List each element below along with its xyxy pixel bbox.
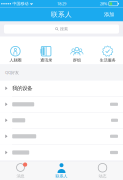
staticText: QQ好友 [5,70,19,75]
button[interactable]: 我的设备 [0,80,123,96]
staticText: 添加 [104,11,114,18]
button[interactable]: 人脉圈 [0,36,31,64]
staticText: 中国移动 [13,1,29,6]
button[interactable]: 搜索 [4,24,119,33]
staticText: 28% [100,1,107,6]
staticText: 我的设备 [12,85,32,92]
staticText: 消息 [16,174,24,179]
button[interactable] [0,128,123,144]
staticText: 搜索 [60,26,68,31]
staticText: 群组 [73,58,81,62]
staticText: 联系人 [55,174,67,179]
staticText: 生活服务 [100,58,116,62]
staticText: 通讯录 [40,58,52,62]
button[interactable]: 动态 [82,162,123,180]
button[interactable]: 群组 [61,36,92,64]
staticText: 人脉圈 [9,58,21,62]
staticText: 动态 [98,174,106,179]
button[interactable] [0,96,123,112]
staticText: 18:29 [57,1,66,6]
button[interactable]: 添加 [100,7,118,21]
button[interactable] [0,112,123,128]
button[interactable] [0,144,123,160]
button[interactable]: 联系人 [41,162,82,180]
button[interactable]: 消息 [0,162,41,180]
button[interactable]: 通讯录 [31,36,62,64]
button[interactable]: 生活服务 [92,36,123,64]
staticText: 联系人 [51,10,72,19]
